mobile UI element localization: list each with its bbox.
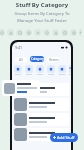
- staticText: Add Stuff: [57, 135, 75, 140]
- button[interactable]: Category tile: [14, 65, 22, 73]
- button[interactable]: Category icon: [79, 29, 82, 36]
- button[interactable]: Category icon: [0, 29, 5, 36]
- button[interactable]: All: [15, 57, 27, 62]
- button[interactable]: Category tile: [47, 65, 55, 73]
- button[interactable]: Category tile: [69, 65, 71, 73]
- button[interactable]: [14, 98, 69, 111]
- button[interactable]: Rooms: [47, 57, 60, 62]
- button[interactable]: Category icon: [70, 29, 77, 36]
- button[interactable]: Category: [30, 56, 44, 62]
- button[interactable]: Category tile: [36, 65, 44, 73]
- button[interactable]: Category icon: [25, 29, 32, 36]
- button[interactable]: Category tile: [25, 65, 33, 73]
- staticText: Category: [31, 57, 44, 61]
- button[interactable]: [14, 128, 69, 141]
- button[interactable]: [2, 80, 40, 96]
- button[interactable]: Category tile: [58, 65, 66, 73]
- button[interactable]: Category icon: [34, 29, 41, 36]
- button[interactable]: Category icon: [61, 29, 68, 36]
- button[interactable]: Category icon: [43, 29, 50, 36]
- staticText: All: [19, 58, 23, 62]
- button[interactable]: Add Stuff: [50, 133, 78, 142]
- staticText: Group Items By Category To Manage Your S…: [0, 11, 84, 24]
- button[interactable]: [14, 113, 69, 126]
- button[interactable]: [14, 83, 69, 96]
- button[interactable]: Category icon: [52, 29, 59, 36]
- staticText: 9:41: [15, 45, 22, 49]
- staticText: Stuff By Category: [0, 1, 84, 9]
- staticText: Rooms: [49, 58, 59, 62]
- button[interactable]: Category icon: [7, 29, 14, 36]
- button[interactable]: Category icon: [16, 29, 23, 36]
